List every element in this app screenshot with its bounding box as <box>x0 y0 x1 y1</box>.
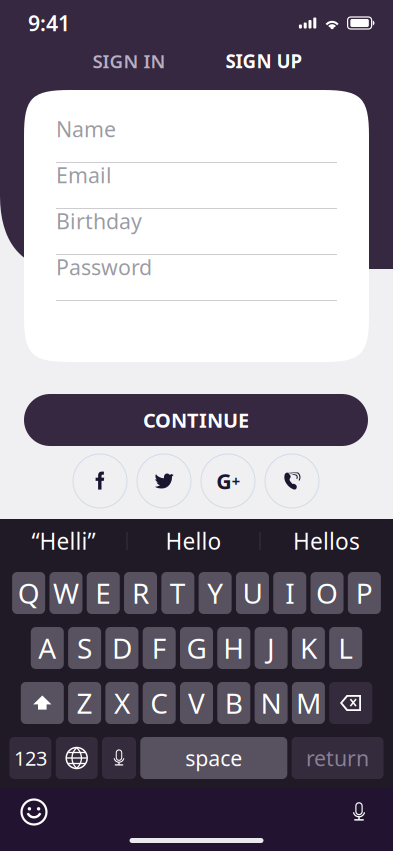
button[interactable]: SIGN IN <box>61 46 196 76</box>
button[interactable]: D <box>105 627 138 669</box>
staticText: 9:41 <box>28 9 70 37</box>
button[interactable]: SIGN UP <box>196 46 331 76</box>
staticText: 123 <box>14 745 47 771</box>
staticText: G <box>186 629 206 667</box>
staticText: V <box>188 684 205 722</box>
button[interactable]: F <box>143 627 176 669</box>
button[interactable]: W <box>49 572 82 614</box>
staticText: space <box>185 744 242 772</box>
button[interactable]: Sign up with phone <box>265 454 319 508</box>
staticText: SIGN UP <box>225 49 302 73</box>
button[interactable]: B <box>217 682 250 724</box>
button[interactable]: Sign up with Twitter <box>137 454 191 508</box>
staticText: T <box>170 574 186 612</box>
staticText: X <box>114 684 130 722</box>
button[interactable]: X <box>105 682 138 724</box>
staticText: W <box>53 574 79 612</box>
button[interactable]: L <box>329 627 362 669</box>
button[interactable]: C <box>143 682 176 724</box>
button[interactable]: Dictation <box>339 795 379 829</box>
staticText: Z <box>77 684 93 722</box>
staticText: Name <box>56 115 116 143</box>
staticText: U <box>242 574 262 612</box>
button[interactable]: “Helli” <box>0 519 126 563</box>
staticText: CONTINUE <box>143 407 249 433</box>
button[interactable]: Sign up with Google Plus <box>201 454 255 508</box>
button[interactable]: Delete <box>329 682 372 724</box>
button[interactable]: N <box>255 682 288 724</box>
staticText: return <box>306 744 369 772</box>
button[interactable]: J <box>255 627 288 669</box>
staticText: S <box>77 629 92 667</box>
button[interactable]: CONTINUE <box>24 394 368 446</box>
button[interactable]: Emoji <box>14 795 54 829</box>
button[interactable]: Next keyboard <box>56 737 98 779</box>
button[interactable]: A <box>31 627 64 669</box>
staticText: M <box>296 684 321 722</box>
staticText: Password <box>56 253 152 281</box>
staticText: Email <box>56 161 112 189</box>
button[interactable]: Hello <box>127 519 259 563</box>
staticText: Q <box>18 574 40 612</box>
staticText: A <box>38 629 56 667</box>
staticText: Birthday <box>56 207 142 235</box>
staticText: C <box>150 684 168 722</box>
button[interactable]: M <box>292 682 325 724</box>
button[interactable]: V <box>180 682 213 724</box>
staticText: R <box>132 574 149 612</box>
button[interactable]: return <box>292 737 384 779</box>
button[interactable]: S <box>68 627 101 669</box>
staticText: F <box>152 629 167 667</box>
staticText: SIGN IN <box>92 49 165 73</box>
button[interactable]: Shift <box>21 682 64 724</box>
button[interactable]: Hellos <box>260 519 392 563</box>
staticText: L <box>338 629 353 667</box>
staticText: J <box>267 629 275 667</box>
button[interactable]: Sign up with Facebook <box>73 454 127 508</box>
staticText: E <box>95 574 111 612</box>
button[interactable]: Y <box>199 572 232 614</box>
button[interactable]: I <box>273 572 306 614</box>
button[interactable]: P <box>348 572 381 614</box>
button[interactable]: Dictation <box>102 737 136 779</box>
staticText: D <box>112 629 132 667</box>
staticText: Y <box>207 574 223 612</box>
staticText: H <box>223 629 244 667</box>
button[interactable]: O <box>311 572 344 614</box>
staticText: + <box>232 471 240 491</box>
staticText: Hellos <box>293 526 360 556</box>
button[interactable]: R <box>124 572 157 614</box>
staticText: “Helli” <box>31 526 95 556</box>
staticText: B <box>225 684 243 722</box>
staticText: I <box>285 574 294 612</box>
button[interactable]: 123 <box>9 737 51 779</box>
button[interactable]: U <box>236 572 269 614</box>
staticText: Hello <box>165 526 221 556</box>
button[interactable]: H <box>217 627 250 669</box>
button[interactable]: Z <box>68 682 101 724</box>
button[interactable]: E <box>87 572 120 614</box>
staticText: N <box>261 684 282 722</box>
staticText: P <box>356 574 373 612</box>
staticText: G <box>216 467 231 495</box>
staticText: K <box>300 629 317 667</box>
button[interactable]: space <box>140 737 287 779</box>
button[interactable]: T <box>161 572 194 614</box>
staticText: O <box>316 574 338 612</box>
button[interactable]: K <box>292 627 325 669</box>
button[interactable]: Q <box>12 572 45 614</box>
button[interactable]: G <box>180 627 213 669</box>
